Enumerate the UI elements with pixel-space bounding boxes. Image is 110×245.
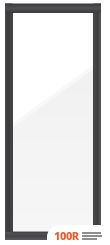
button[interactable]: 100R watermark <box>47 225 110 245</box>
staticText: 100R <box>54 228 79 243</box>
button[interactable]: Glass shower door, anthracite frame <box>0 0 110 245</box>
